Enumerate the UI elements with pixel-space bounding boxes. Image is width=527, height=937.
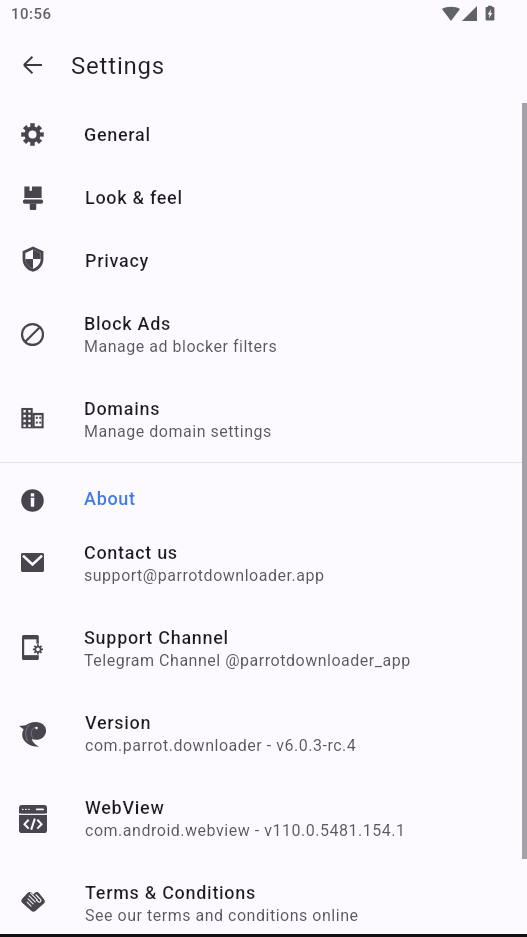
button[interactable]: Domains (0, 377, 527, 462)
button[interactable]: WebView (0, 776, 527, 861)
button[interactable]: Privacy (0, 229, 527, 292)
staticText: Manage domain settings (84, 422, 272, 441)
staticText: Look & feel (85, 187, 183, 208)
button[interactable]: General (0, 103, 527, 166)
staticText: Contact us (84, 542, 178, 563)
staticText: Settings (71, 52, 166, 80)
button[interactable]: Version (0, 691, 527, 776)
staticText: Terms & Conditions (85, 882, 256, 903)
staticText: Support Channel (84, 627, 229, 648)
staticText: Block Ads (84, 313, 172, 334)
staticText: See our terms and conditions online (85, 906, 359, 925)
button[interactable]: Support Channel (0, 606, 527, 691)
button[interactable]: Back (9, 41, 57, 89)
button[interactable]: Look & feel (0, 166, 527, 229)
staticText: com.android.webview - v110.0.5481.154.1 (85, 821, 406, 840)
staticText: Version (85, 712, 152, 733)
button[interactable]: Contact us (0, 521, 527, 606)
staticText: About (84, 488, 136, 509)
button[interactable]: About (0, 475, 527, 521)
staticText: com.parrot.downloader - v6.0.3-rc.4 (85, 736, 357, 755)
staticText: support@parrotdownloader.app (84, 566, 325, 585)
button[interactable]: Block Ads (0, 292, 527, 377)
staticText: WebView (85, 797, 165, 818)
staticText: Privacy (85, 250, 150, 271)
staticText: 10:56 (11, 5, 52, 23)
staticText: Manage ad blocker filters (84, 337, 278, 356)
button[interactable]: Terms & Conditions (0, 861, 527, 937)
staticText: Telegram Channel @parrotdownloader_app (84, 651, 411, 670)
staticText: Domains (84, 398, 161, 419)
staticText: General (84, 124, 151, 145)
